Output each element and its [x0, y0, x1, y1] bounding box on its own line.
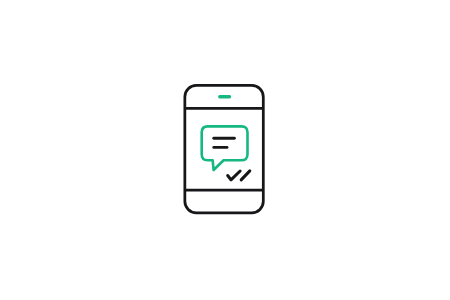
- button[interactable]: Message delivered on phone illustration: [0, 0, 450, 300]
